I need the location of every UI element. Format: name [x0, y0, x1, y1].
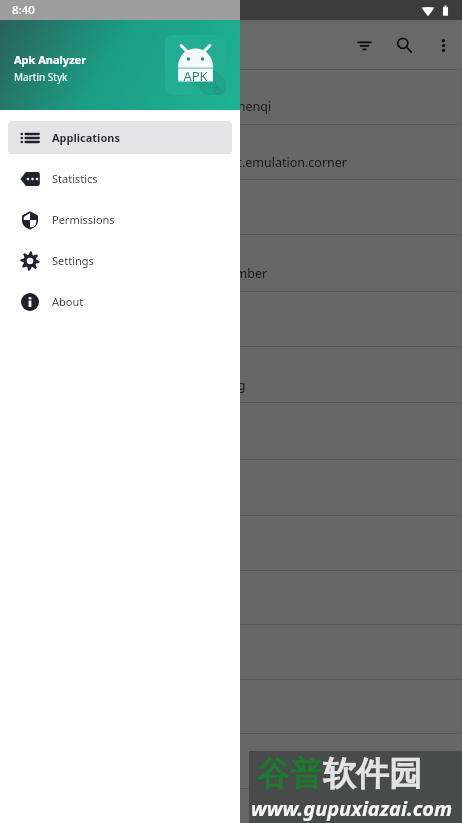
- button[interactable]: Search: [384, 25, 424, 65]
- staticText: 软件园: [323, 753, 422, 795]
- staticText: Settings: [52, 253, 94, 268]
- staticText: com.android.cts.verifier.layout.emulatio…: [65, 154, 347, 171]
- staticText: Statistics: [52, 171, 98, 186]
- staticText: APK: [183, 67, 208, 85]
- button[interactable]: [0, 734, 462, 788]
- staticText: com.excelliance.multiaccount.zhenqi: [56, 98, 272, 115]
- button[interactable]: Statistics: [8, 162, 232, 195]
- staticText: www.gupuxiazai.com: [251, 795, 453, 822]
- button[interactable]: 真气: [0, 70, 462, 124]
- staticText: Apk Analyzer: [14, 52, 87, 67]
- button[interactable]: [0, 680, 462, 733]
- button[interactable]: [0, 180, 462, 234]
- button[interactable]: [0, 571, 462, 624]
- button[interactable]: Filter: [344, 25, 384, 65]
- button[interactable]: Living: [0, 347, 462, 402]
- staticText: 谷普: [257, 753, 323, 795]
- button[interactable]: Corner: [0, 125, 462, 179]
- button[interactable]: Settings: [8, 244, 232, 277]
- staticText: Applications: [52, 130, 120, 145]
- staticText: About: [52, 294, 84, 309]
- staticText: Corner: [65, 133, 108, 151]
- button[interactable]: Permissions: [8, 203, 232, 236]
- button[interactable]: Applications: [8, 121, 232, 154]
- staticText: com.android.wallpaper.living: [77, 377, 246, 394]
- button[interactable]: [0, 460, 462, 515]
- button[interactable]: More options: [424, 26, 462, 64]
- button[interactable]: [0, 516, 462, 570]
- button[interactable]: Number: [0, 235, 462, 291]
- staticText: Permissions: [52, 212, 115, 227]
- staticText: Martin Styk: [14, 70, 68, 84]
- button[interactable]: [0, 789, 462, 823]
- staticText: 真气: [56, 79, 82, 95]
- staticText: 8:40: [12, 2, 35, 18]
- button[interactable]: About: [8, 285, 232, 318]
- button[interactable]: [0, 625, 462, 679]
- button[interactable]: [0, 403, 462, 459]
- button[interactable]: [0, 292, 462, 346]
- staticText: com.google.android.apps.calling.number: [25, 265, 268, 282]
- staticText: Number: [25, 244, 77, 262]
